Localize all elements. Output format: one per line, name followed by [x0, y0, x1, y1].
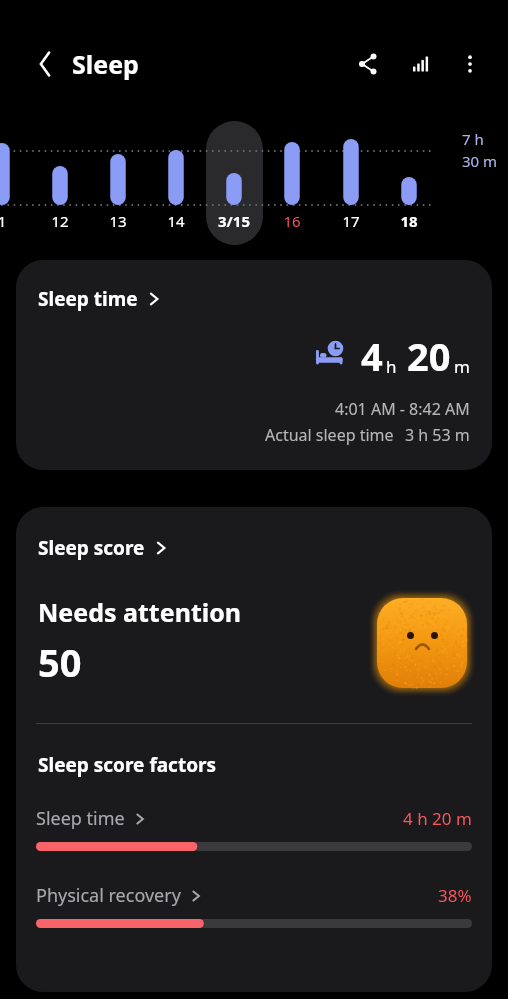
- button[interactable]: Back: [24, 43, 66, 85]
- button[interactable]: More options: [448, 42, 492, 86]
- staticText: 4:01 AM - 8:42 AM: [335, 398, 470, 420]
- staticText: 1: [0, 211, 32, 231]
- staticText: Sleep score: [38, 535, 145, 561]
- staticText: Sleep time: [38, 286, 138, 312]
- staticText: 12: [30, 211, 90, 231]
- button[interactable]: Sleep score: [38, 535, 168, 561]
- staticText: Needs attention: [38, 595, 242, 629]
- button[interactable]: Sleep time: [16, 260, 492, 470]
- staticText: Sleep: [72, 47, 139, 81]
- staticText: h: [386, 355, 397, 378]
- staticText: 18: [379, 211, 439, 231]
- staticText: 4 h 20 m: [403, 807, 472, 830]
- staticText: 16: [262, 211, 322, 231]
- staticText: 3/15: [204, 211, 264, 231]
- staticText: Sleep time: [36, 806, 125, 831]
- staticText: 14: [146, 211, 206, 231]
- staticText: 38%: [438, 884, 472, 907]
- staticText: 3 h 53 m: [405, 424, 470, 446]
- staticText: Physical recovery: [36, 883, 181, 908]
- staticText: Actual sleep time: [265, 424, 394, 446]
- staticText: 30 m: [462, 151, 498, 171]
- staticText: 7 h: [462, 129, 484, 149]
- staticText: 13: [88, 211, 148, 231]
- staticText: 20: [407, 330, 451, 382]
- staticText: 4: [361, 330, 383, 382]
- staticText: m: [454, 355, 470, 378]
- staticText: 17: [321, 211, 381, 231]
- button[interactable]: Share: [346, 42, 390, 86]
- button[interactable]: Sleep time: [16, 806, 492, 851]
- staticText: 50: [38, 636, 82, 688]
- staticText: Sleep score factors: [38, 752, 217, 778]
- button[interactable]: Physical recovery: [16, 883, 492, 928]
- button[interactable]: Statistics: [398, 42, 442, 86]
